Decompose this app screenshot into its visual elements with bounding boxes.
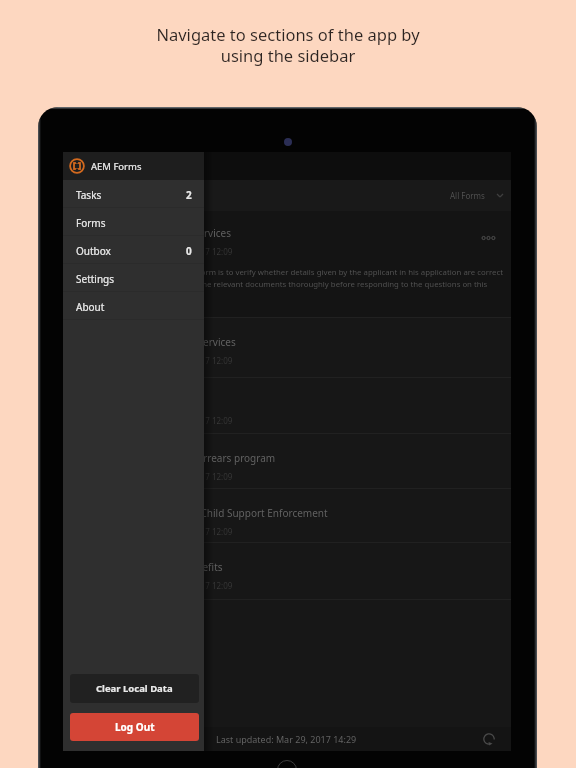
staticText: Outbox [76, 244, 111, 258]
staticText: Mar 29, 2017 12:09 [161, 415, 233, 426]
staticText: Forms [76, 216, 106, 230]
staticText: Application for benefits [113, 560, 223, 574]
staticText: Mar 29, 2017 12:09 [161, 246, 233, 257]
staticText: The purpose of this form is to verify wh… [125, 267, 503, 290]
button[interactable]: Application for services [63, 211, 511, 317]
button[interactable]: Mar 29, 2017 12:09 [63, 377, 511, 433]
button[interactable]: About [63, 292, 204, 320]
button[interactable]: All Forms [438, 183, 511, 208]
staticText: Child Support Arrears program [130, 451, 276, 465]
staticText: Mar 29, 2017 12:09 [161, 471, 233, 482]
button[interactable]: Clear Local Data [70, 674, 199, 703]
staticText: Last updated: Mar 29, 2017 14:29 [216, 733, 357, 745]
staticText: 0 [186, 244, 192, 258]
staticText: About [76, 300, 105, 314]
button[interactable]: Log Out [70, 713, 199, 741]
button[interactable]: Child Support Arrears program [63, 433, 511, 488]
button[interactable]: Application for benefits [63, 542, 511, 599]
button[interactable]: More options [479, 233, 498, 243]
button[interactable]: Forms [63, 208, 204, 236]
staticText: Tasks [76, 188, 102, 202]
staticText: Clear Local Data [96, 682, 173, 695]
staticText: Mar 29, 2017 12:09 [161, 526, 233, 537]
button[interactable]: Application for Child Support Enforcemen… [63, 488, 511, 542]
button[interactable]: Tasks [63, 180, 204, 208]
staticText: Applications for services [122, 335, 236, 349]
staticText: Application for services [122, 226, 231, 240]
staticText: Mar 29, 2017 12:09 [161, 355, 233, 366]
button[interactable]: Applications for services [63, 317, 511, 377]
staticText: 2 [186, 188, 192, 202]
staticText: Mar 29, 2017 12:09 [161, 580, 233, 591]
staticText: Application for Child Support Enforcemen… [129, 506, 328, 520]
staticText: Navigate to sections of the app by using… [156, 23, 420, 67]
staticText: Log Out [115, 720, 155, 734]
staticText: All Forms [450, 190, 485, 201]
button[interactable]: Outbox [63, 236, 204, 264]
button[interactable]: Refresh [483, 733, 495, 745]
staticText: AEM Forms [91, 160, 142, 173]
staticText: Settings [76, 272, 115, 286]
button[interactable]: Settings [63, 264, 204, 292]
